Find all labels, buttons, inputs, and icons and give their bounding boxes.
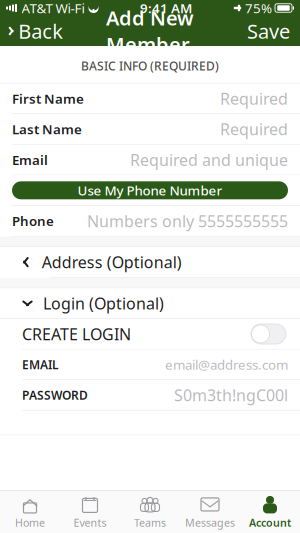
- staticText: First Name: [12, 90, 84, 107]
- staticText: Login (Optional): [43, 293, 164, 314]
- staticText: Phone: [12, 212, 54, 230]
- button[interactable]: Account: [240, 490, 300, 533]
- staticText: Required: [220, 88, 288, 109]
- staticText: PASSWORD: [22, 387, 88, 403]
- staticText: CREATE LOGIN: [22, 323, 131, 344]
- staticText: Use My Phone Number: [77, 181, 222, 199]
- staticText: Account: [249, 515, 291, 530]
- staticText: Back: [18, 18, 63, 44]
- staticText: Required: [220, 118, 288, 140]
- staticText: Email: [12, 151, 48, 169]
- staticText: 9:41 AM: [140, 0, 192, 17]
- staticText: AT&T Wi-Fi: [21, 0, 84, 17]
- button[interactable]: Home: [0, 490, 60, 533]
- staticText: Address (Optional): [42, 251, 182, 273]
- staticText: Home: [15, 515, 45, 530]
- staticText: 75%: [245, 0, 272, 17]
- button[interactable]: CREATE LOGIN: [0, 319, 300, 349]
- staticText: Messages: [185, 515, 235, 530]
- staticText: Events: [73, 515, 106, 530]
- button[interactable]: Login (Optional): [0, 288, 300, 318]
- staticText: EMAIL: [22, 357, 59, 372]
- button[interactable]: Teams: [120, 490, 180, 533]
- staticText: email@address.com: [165, 356, 288, 373]
- button[interactable]: Save: [230, 10, 300, 52]
- staticText: Required and unique: [130, 149, 288, 170]
- button[interactable]: Back: [0, 10, 70, 52]
- button[interactable]: Messages: [180, 490, 240, 533]
- button[interactable]: Use My Phone Number: [0, 175, 300, 205]
- staticText: Save: [247, 18, 290, 44]
- button[interactable]: Events: [60, 490, 120, 533]
- staticText: BASIC INFO (REQUIRED): [81, 58, 219, 74]
- staticText: Teams: [134, 515, 166, 530]
- button[interactable]: Address (Optional): [0, 247, 300, 277]
- staticText: Last Name: [12, 120, 82, 138]
- staticText: S0m3th!ngC00l: [174, 384, 288, 406]
- staticText: Add New Member: [106, 4, 194, 57]
- staticText: Numbers only 5555555555: [87, 210, 288, 231]
